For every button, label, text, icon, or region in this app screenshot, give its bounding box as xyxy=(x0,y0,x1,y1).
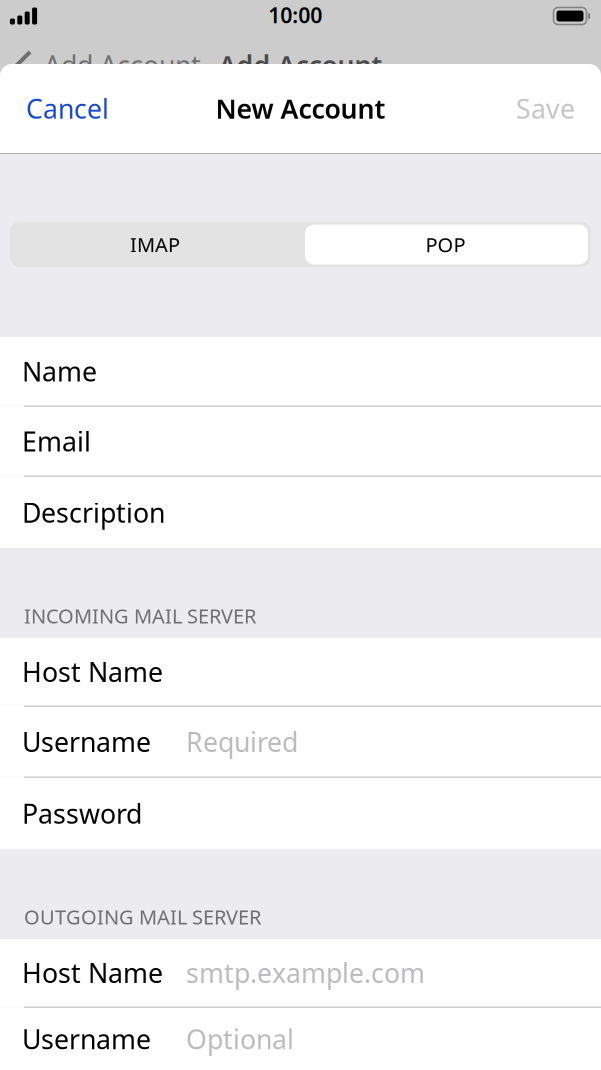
staticText: Password xyxy=(22,796,142,831)
staticText: smtp.example.com xyxy=(186,955,425,990)
button[interactable]: Username xyxy=(0,1008,601,1070)
staticText: INCOMING MAIL SERVER xyxy=(24,602,256,629)
button[interactable]: Password xyxy=(0,778,601,849)
staticText: OUTGOING MAIL SERVER xyxy=(24,903,261,930)
staticText: Add Account xyxy=(218,47,382,83)
staticText: Username xyxy=(22,1021,151,1057)
staticText: Name xyxy=(22,353,97,389)
button[interactable]: IMAP xyxy=(10,222,300,267)
staticText: Add Account xyxy=(44,47,201,83)
staticText: Required xyxy=(186,724,298,759)
staticText: IMAP xyxy=(130,231,180,258)
staticText: Host Name xyxy=(22,654,163,689)
button[interactable]: POP xyxy=(300,222,591,267)
staticText: Description xyxy=(22,495,165,530)
staticText: 10:00 xyxy=(268,1,322,29)
button[interactable]: Email xyxy=(0,407,601,475)
staticText: New Account xyxy=(215,91,385,126)
button[interactable]: Description xyxy=(0,477,601,548)
staticText: Cancel xyxy=(26,91,109,126)
button[interactable]: Username xyxy=(0,707,601,776)
button[interactable]: Host Name xyxy=(0,638,601,705)
button[interactable]: Save xyxy=(502,64,601,153)
staticText: Optional xyxy=(186,1021,294,1057)
button[interactable]: Cancel xyxy=(0,64,123,153)
staticText: Save xyxy=(516,91,575,126)
staticText: POP xyxy=(425,231,465,258)
staticText: Host Name xyxy=(22,955,163,990)
staticText: Username xyxy=(22,724,151,759)
staticText: Email xyxy=(22,423,91,459)
button[interactable]: Host Name xyxy=(0,939,601,1006)
button[interactable]: Name xyxy=(0,337,601,405)
